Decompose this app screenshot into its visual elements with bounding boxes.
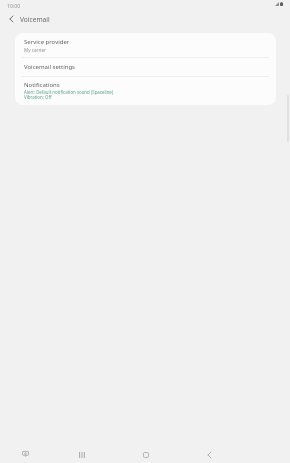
button[interactable]: Notifications xyxy=(15,77,276,105)
button[interactable]: Hide keyboard xyxy=(9,442,41,463)
staticText: 10:00 xyxy=(7,2,21,9)
staticText: Service provider xyxy=(24,38,70,46)
staticText: Voicemail settings xyxy=(24,63,75,71)
staticText: Alert: Default notification sound (Space… xyxy=(24,89,114,100)
staticText: Notifications xyxy=(24,81,60,89)
button[interactable]: Navigate up xyxy=(1,9,21,29)
button[interactable]: Service provider xyxy=(15,33,276,57)
staticText: My carrier xyxy=(24,47,46,53)
button[interactable]: Back xyxy=(193,443,225,463)
staticText: Voicemail xyxy=(20,15,50,24)
button[interactable]: Voicemail settings xyxy=(15,58,276,76)
button[interactable]: Home xyxy=(130,443,162,463)
button[interactable]: Recent apps xyxy=(66,443,98,463)
